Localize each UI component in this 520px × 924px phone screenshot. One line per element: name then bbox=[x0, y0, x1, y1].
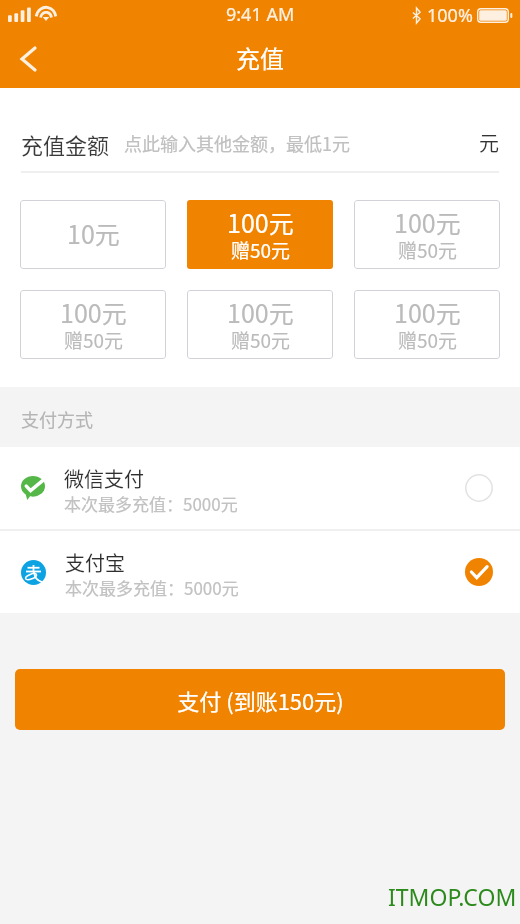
button[interactable]: 100元 bbox=[187, 200, 333, 269]
button[interactable]: 10元 bbox=[20, 200, 166, 269]
staticText: 9:41 AM bbox=[226, 2, 295, 27]
staticText: 点此输入其他金额，最低1元 bbox=[124, 130, 350, 156]
staticText: 赠50元 bbox=[231, 326, 291, 354]
staticText: 支付宝 bbox=[65, 548, 125, 577]
staticText: 本次最多充值：5000元 bbox=[65, 575, 239, 600]
staticText: ITMOP.COM bbox=[388, 881, 517, 912]
staticText: 赠50元 bbox=[398, 236, 458, 264]
staticText: 赠50元 bbox=[64, 326, 124, 354]
staticText: 100元 bbox=[227, 204, 294, 240]
staticText: 100元 bbox=[394, 294, 461, 330]
button[interactable]: 100元 bbox=[354, 290, 500, 359]
button[interactable]: 100元 bbox=[20, 290, 166, 359]
button[interactable]: 100元 bbox=[354, 200, 500, 269]
button[interactable]: Back bbox=[0, 31, 56, 87]
button[interactable]: 100元 bbox=[187, 290, 333, 359]
staticText: 赠50元 bbox=[398, 326, 458, 354]
staticText: 支付方式 bbox=[21, 406, 93, 432]
staticText: 100% bbox=[427, 3, 473, 28]
staticText: 支付 (到账150元) bbox=[177, 684, 344, 716]
staticText: 微信支付 bbox=[64, 464, 144, 493]
button[interactable]: 微信支付 bbox=[0, 447, 520, 529]
staticText: 10元 bbox=[67, 215, 120, 251]
staticText: 赠50元 bbox=[231, 236, 291, 264]
staticText: 本次最多充值：5000元 bbox=[64, 491, 238, 516]
button[interactable]: 支付 (到账150元) bbox=[15, 669, 505, 730]
staticText: 100元 bbox=[60, 294, 127, 330]
staticText: 100元 bbox=[227, 294, 294, 330]
button[interactable]: 支付宝 bbox=[0, 531, 520, 613]
staticText: 充值金额 bbox=[21, 128, 110, 160]
staticText: 元 bbox=[479, 128, 499, 157]
staticText: 充值 bbox=[236, 40, 284, 75]
staticText: 100元 bbox=[394, 204, 461, 240]
